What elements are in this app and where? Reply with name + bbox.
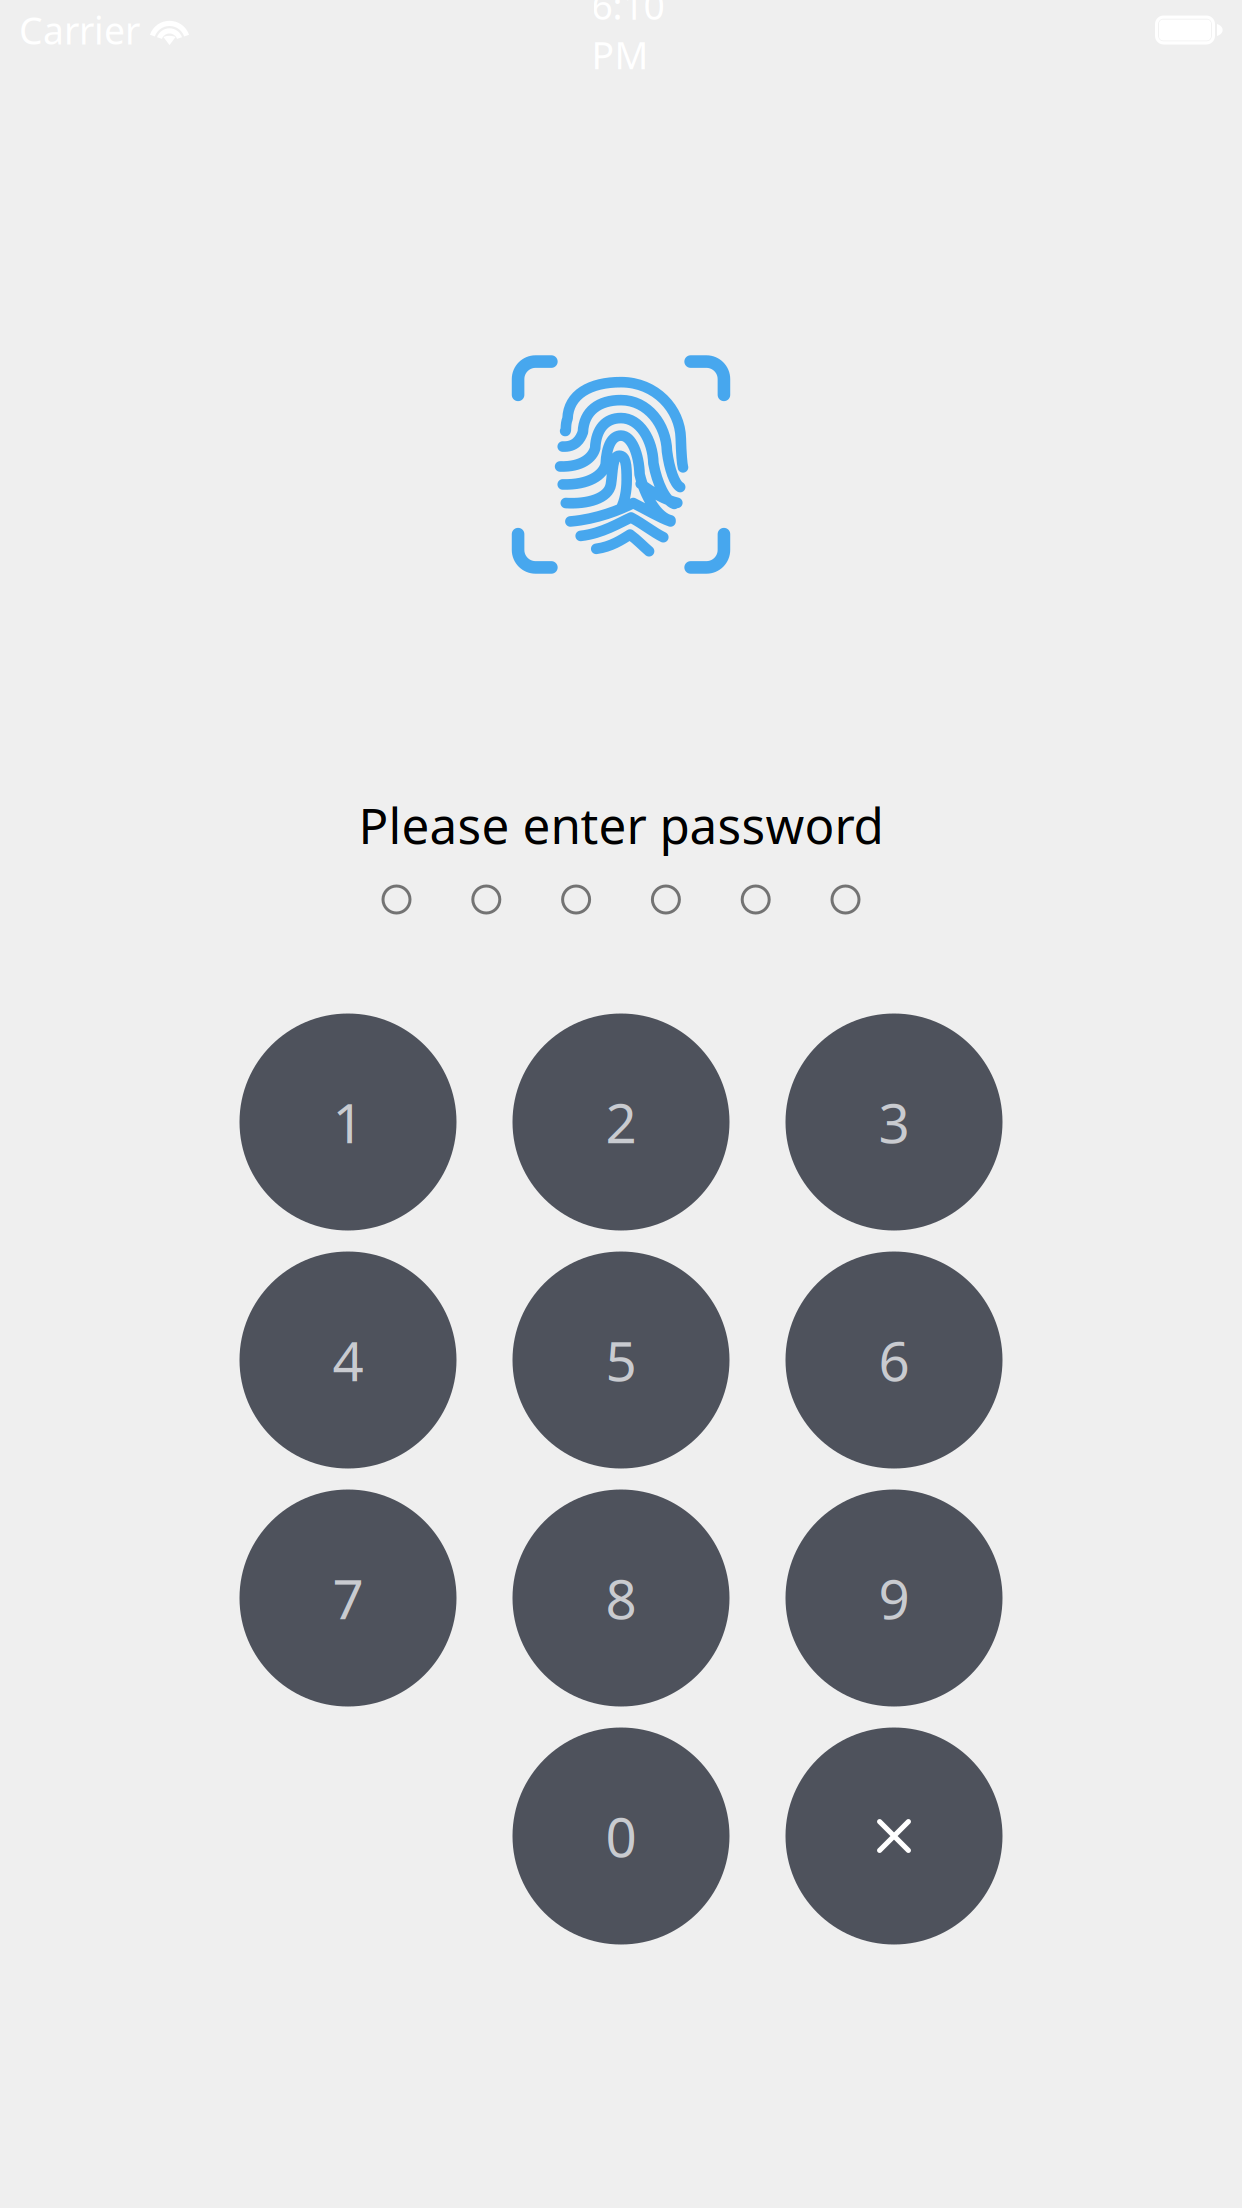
- staticText: 2: [605, 1086, 636, 1158]
- button[interactable]: Delete: [785, 1727, 1002, 1944]
- staticText: Please enter password: [358, 792, 883, 857]
- staticText: 7: [332, 1562, 363, 1634]
- staticText: 4: [332, 1324, 363, 1396]
- staticText: Carrier: [19, 5, 140, 55]
- staticText: 8: [605, 1562, 636, 1634]
- staticText: 0: [605, 1800, 636, 1872]
- staticText: 3: [878, 1086, 909, 1158]
- button[interactable]: 5: [512, 1251, 729, 1468]
- button[interactable]: 9: [785, 1489, 1002, 1706]
- staticText: 9: [878, 1562, 909, 1634]
- staticText: 6: [878, 1324, 909, 1396]
- button[interactable]: 0: [512, 1727, 729, 1944]
- button[interactable]: 3: [785, 1013, 1002, 1230]
- staticText: 1: [332, 1086, 363, 1158]
- staticText: 6:10 PM: [591, 0, 664, 80]
- button[interactable]: 8: [512, 1489, 729, 1706]
- button[interactable]: 7: [239, 1489, 456, 1706]
- button[interactable]: 2: [512, 1013, 729, 1230]
- button[interactable]: 6: [785, 1251, 1002, 1468]
- button[interactable]: 1: [239, 1013, 456, 1230]
- button[interactable]: 4: [239, 1251, 456, 1468]
- staticText: 5: [605, 1324, 636, 1396]
